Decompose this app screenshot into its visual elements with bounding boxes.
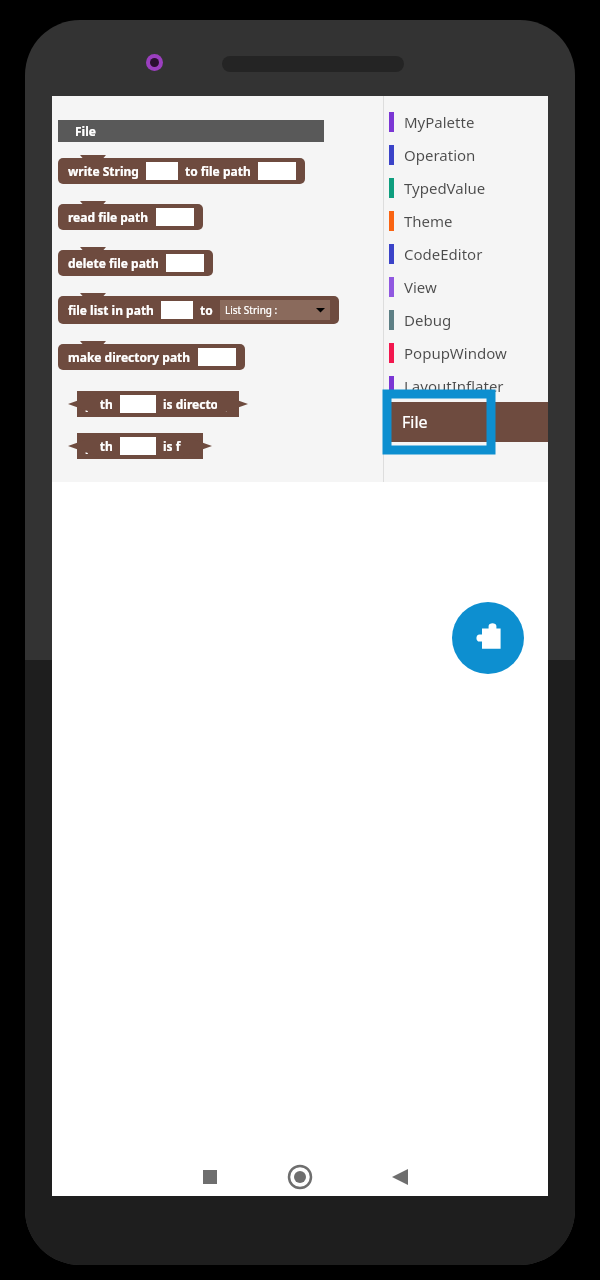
button[interactable]: Home	[272, 1157, 328, 1196]
staticText: to	[200, 302, 213, 318]
staticText: read file path	[68, 209, 149, 225]
staticText: LayoutInflater	[404, 376, 504, 396]
button[interactable]: LayoutInflater	[384, 369, 548, 402]
staticText: file list in path	[68, 302, 154, 318]
button[interactable]: View source code	[336, 102, 388, 154]
button[interactable]: List String :	[220, 300, 330, 320]
button[interactable]: File	[384, 402, 548, 442]
button[interactable]: path	[66, 389, 250, 419]
staticText: path	[85, 438, 113, 454]
staticText: MyPalette	[404, 112, 475, 132]
button[interactable]: MyPalette	[384, 105, 548, 138]
staticText: On activity create	[69, 129, 167, 144]
staticText: to file path	[185, 163, 251, 179]
button[interactable]: Add block	[452, 602, 524, 674]
button[interactable]: path	[66, 431, 214, 461]
button[interactable]: File	[58, 120, 324, 142]
staticText: is directory	[163, 396, 231, 412]
button[interactable]: Recent apps	[182, 1157, 238, 1196]
button[interactable]: Undo	[388, 102, 440, 154]
staticText: CodeEditor	[404, 244, 483, 264]
button[interactable]: write String	[58, 155, 305, 189]
staticText: TypedValue	[404, 178, 486, 198]
staticText: 6:59 AM	[77, 106, 136, 126]
button[interactable]: Back	[52, 101, 106, 155]
staticText: File	[402, 411, 428, 433]
button[interactable]: TypedValue	[384, 171, 548, 204]
button[interactable]: View	[384, 270, 548, 303]
staticText: View	[404, 277, 437, 297]
button[interactable]: delete file path	[58, 247, 213, 281]
staticText: Operation	[404, 145, 476, 165]
button[interactable]: Debug	[384, 303, 548, 336]
button[interactable]: make directory path	[58, 341, 245, 375]
staticText: Theme	[404, 211, 453, 231]
staticText: On activity...	[116, 114, 241, 141]
button[interactable]: Back	[372, 1157, 428, 1196]
staticText: PopupWindow	[404, 343, 507, 363]
button[interactable]: On activity create	[62, 115, 185, 151]
staticText: is file	[163, 438, 195, 454]
staticText: path	[85, 396, 113, 412]
staticText: List String :	[225, 303, 278, 317]
staticText: Debug	[404, 310, 452, 330]
staticText: make directory path	[68, 349, 191, 365]
button[interactable]: Operation	[384, 138, 548, 171]
staticText: File	[75, 123, 96, 139]
button[interactable]: Redo	[440, 102, 492, 154]
button[interactable]: Theme	[384, 204, 548, 237]
staticText: write String	[68, 163, 139, 179]
button[interactable]: CodeEditor	[384, 237, 548, 270]
staticText: delete file path	[68, 255, 159, 271]
button[interactable]: file list in path	[58, 293, 339, 329]
button[interactable]: read file path	[58, 201, 203, 235]
button[interactable]: PopupWindow	[384, 336, 548, 369]
